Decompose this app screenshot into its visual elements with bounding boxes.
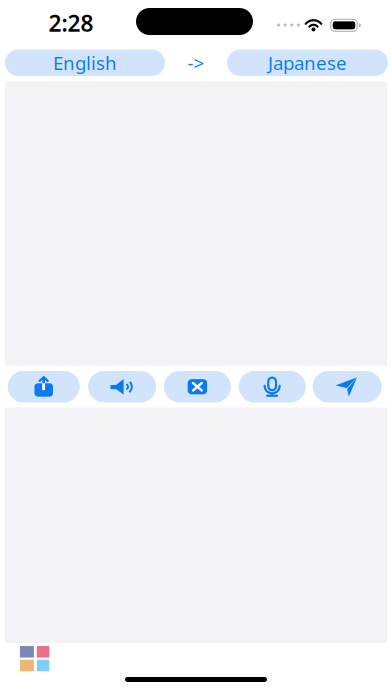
button[interactable]: Share [8, 371, 80, 402]
button[interactable]: Translate [313, 371, 382, 402]
staticText: English [53, 50, 117, 75]
button[interactable]: Apps [20, 646, 50, 672]
button[interactable]: Dictate [239, 371, 306, 402]
button[interactable]: Swap languages [187, 50, 204, 75]
staticText: 2:28 [48, 8, 93, 38]
button[interactable]: Clear text [164, 371, 231, 402]
button[interactable]: Japanese [227, 49, 388, 76]
staticText: -> [187, 50, 204, 75]
button[interactable]: English [5, 49, 165, 76]
staticText: Japanese [268, 50, 347, 75]
button[interactable]: Speak [88, 371, 156, 402]
